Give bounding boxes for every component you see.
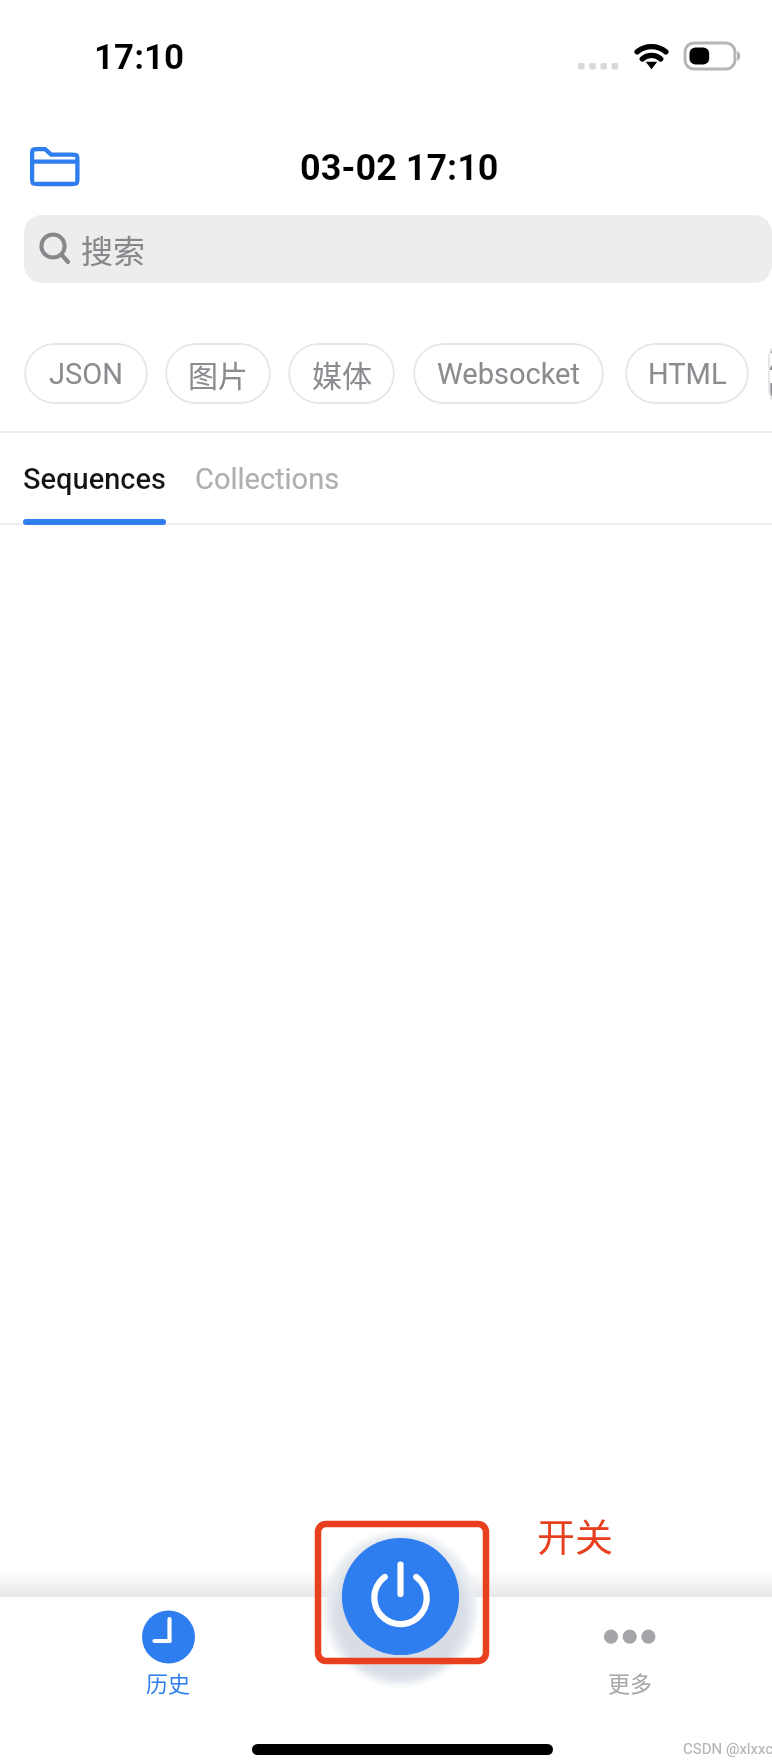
button[interactable]: 搜索 <box>24 215 772 283</box>
staticText: 更多 <box>608 1666 653 1698</box>
button[interactable]: XML <box>768 343 772 404</box>
button[interactable]: 媒体 <box>288 343 395 404</box>
button[interactable]: Power <box>300 1500 500 1700</box>
staticText: Collections <box>195 462 340 496</box>
staticText: 搜索 <box>81 226 146 272</box>
staticText: 历史 <box>146 1666 191 1698</box>
staticText: 17:10 <box>94 37 185 78</box>
button[interactable]: Collections <box>195 462 340 496</box>
button[interactable]: Sequences <box>23 462 166 496</box>
button[interactable]: HTML <box>625 343 749 404</box>
button[interactable]: 历史 <box>68 1605 268 1715</box>
button[interactable]: 更多 <box>530 1605 730 1715</box>
staticText: CSDN @xlxxcc <box>683 1740 772 1758</box>
button[interactable]: Websocket <box>413 343 604 404</box>
button[interactable]: 图片 <box>165 343 271 404</box>
staticText: 开关 <box>537 1507 614 1562</box>
button[interactable]: Folder <box>16 133 94 199</box>
staticText: Sequences <box>23 462 166 496</box>
staticText: XML <box>768 343 772 404</box>
staticText: JSON <box>49 357 123 391</box>
staticText: HTML <box>648 357 727 391</box>
button[interactable]: JSON <box>24 343 148 404</box>
staticText: 图片 <box>188 352 248 395</box>
staticText: Websocket <box>437 357 580 391</box>
staticText: 03-02 17:10 <box>300 147 499 189</box>
staticText: 媒体 <box>312 352 372 395</box>
